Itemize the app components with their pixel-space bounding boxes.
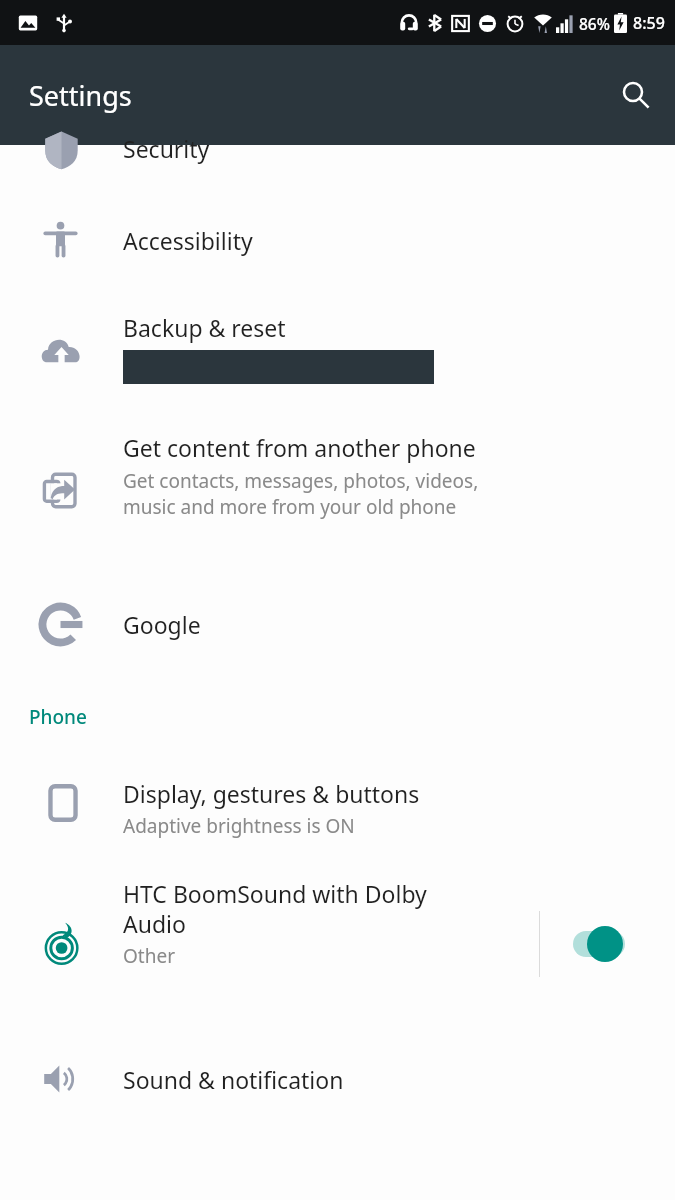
staticText: Adaptive brightness is ON (123, 813, 355, 839)
staticText: Sound & notification (123, 1064, 344, 1095)
button[interactable]: Display, gestures & buttons (0, 756, 675, 861)
staticText: Display, gestures & buttons (123, 778, 420, 809)
button[interactable]: Security (0, 145, 675, 180)
staticText: 86% (579, 13, 610, 34)
button[interactable]: Get content from another phone (0, 410, 675, 570)
staticText: Phone (29, 704, 87, 730)
staticText: Settings (29, 77, 132, 114)
staticText: Other (123, 943, 176, 969)
button[interactable]: Search (610, 69, 662, 121)
staticText: Security (123, 133, 210, 164)
button[interactable]: HTC BoomSound with Dolby Audio (0, 861, 675, 1024)
staticText: HTC BoomSound with Dolby Audio (123, 878, 427, 939)
staticText: 8:59 (633, 12, 665, 34)
staticText: Google (123, 609, 201, 640)
staticText: Backup & reset (123, 312, 286, 343)
staticText: Get content from another phone (123, 432, 476, 463)
button[interactable]: HTC BoomSound toggle (561, 918, 647, 970)
staticText: Get contacts, messages, photos, videos, … (123, 468, 479, 520)
button[interactable]: Google (0, 570, 675, 678)
button[interactable]: Accessibility (0, 180, 675, 300)
button[interactable]: Sound & notification (0, 1024, 675, 1134)
staticText: Accessibility (123, 225, 253, 256)
button[interactable]: Backup & reset (0, 300, 675, 410)
